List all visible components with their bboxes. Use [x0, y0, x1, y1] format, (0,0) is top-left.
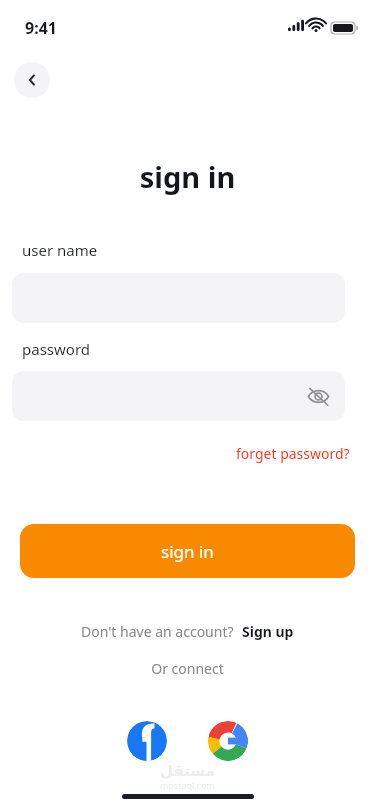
staticText: password [22, 339, 90, 359]
button[interactable]: Sign in with Facebook [127, 721, 167, 761]
button[interactable]: Sign up [242, 622, 294, 641]
staticText: Sign up [242, 622, 294, 641]
button[interactable]: Show password [301, 379, 335, 413]
button[interactable]: Show password [12, 371, 345, 421]
staticText: Or connect [0, 659, 375, 678]
staticText: forget password? [236, 444, 350, 463]
staticText: Don't have an account? [81, 622, 234, 641]
button[interactable]: Sign in with Google [208, 721, 248, 761]
button[interactable]: forget password? [232, 440, 354, 467]
staticText: 9:41 [25, 17, 57, 39]
staticText: مستقل [160, 762, 215, 779]
staticText: sign in [161, 540, 214, 563]
button[interactable]: sign in [20, 524, 355, 578]
staticText: mostaql.com [160, 779, 215, 791]
staticText: user name [22, 240, 98, 260]
staticText: sign in [0, 157, 375, 196]
button[interactable]: Back [14, 62, 50, 98]
